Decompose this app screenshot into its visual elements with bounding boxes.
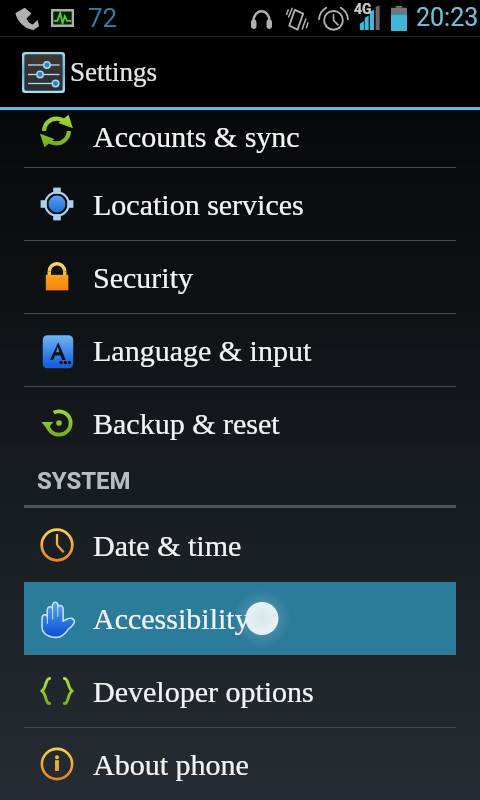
staticText: About phone bbox=[93, 748, 249, 781]
staticText: Backup & reset bbox=[93, 407, 280, 440]
button[interactable]: Developer options bbox=[24, 655, 456, 727]
staticText: Location services bbox=[93, 188, 304, 221]
other: Call bbox=[14, 7, 39, 30]
staticText: Security bbox=[93, 261, 193, 294]
staticText: 4G bbox=[354, 1, 372, 17]
button[interactable]: Date & time bbox=[24, 508, 456, 582]
staticText: 72 bbox=[88, 3, 118, 33]
button[interactable]: Backup & reset bbox=[24, 387, 456, 459]
button[interactable]: Security bbox=[24, 241, 456, 313]
staticText: Developer options bbox=[93, 675, 314, 708]
button[interactable]: Accessibility bbox=[24, 582, 456, 655]
staticText: Language & input bbox=[93, 334, 312, 367]
staticText: SYSTEM bbox=[37, 467, 131, 495]
staticText: 20:23 bbox=[416, 3, 479, 32]
staticText: Accounts & sync bbox=[93, 120, 300, 153]
button[interactable]: Language & input bbox=[24, 314, 456, 386]
staticText: Accessibility bbox=[93, 602, 250, 635]
button[interactable]: About phone bbox=[24, 728, 456, 800]
button[interactable]: Location services bbox=[24, 168, 456, 240]
staticText: Date & time bbox=[93, 529, 242, 562]
staticText: Settings bbox=[70, 57, 158, 87]
button[interactable]: Accounts & sync bbox=[24, 110, 456, 167]
